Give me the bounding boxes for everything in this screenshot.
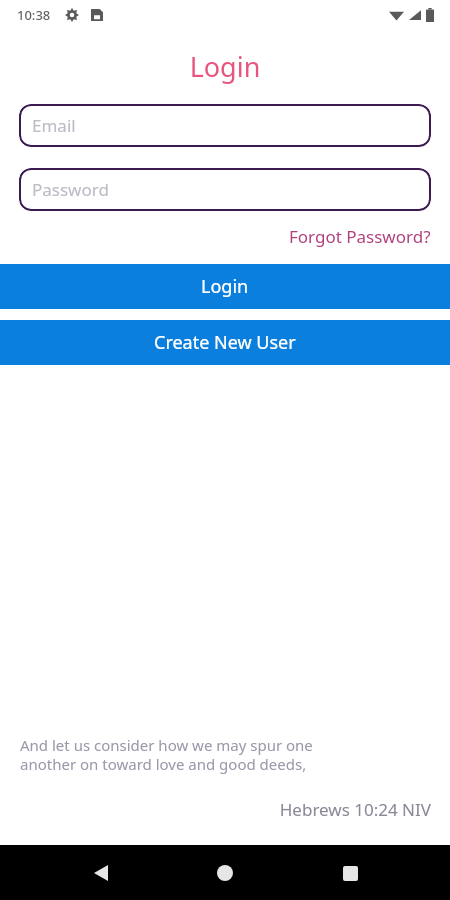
- staticText: Email: [32, 114, 76, 137]
- staticText: Create New User: [154, 330, 296, 355]
- staticText: Forgot Password?: [289, 225, 431, 248]
- button[interactable]: Back: [77, 849, 125, 897]
- staticText: Password: [32, 178, 109, 201]
- staticText: 10:38: [17, 6, 51, 24]
- button[interactable]: Create New User: [0, 320, 450, 365]
- staticText: Hebrews 10:24 NIV: [20, 798, 431, 821]
- staticText: And let us consider how we may spur one …: [20, 735, 430, 774]
- button[interactable]: Login: [0, 264, 450, 309]
- button[interactable]: Forgot Password?: [289, 225, 431, 248]
- staticText: Login: [201, 274, 249, 299]
- button[interactable]: Email: [19, 104, 431, 147]
- button[interactable]: Home: [201, 849, 249, 897]
- staticText: Login: [0, 48, 450, 85]
- button[interactable]: Password: [19, 168, 431, 211]
- button[interactable]: Recent apps: [326, 849, 374, 897]
